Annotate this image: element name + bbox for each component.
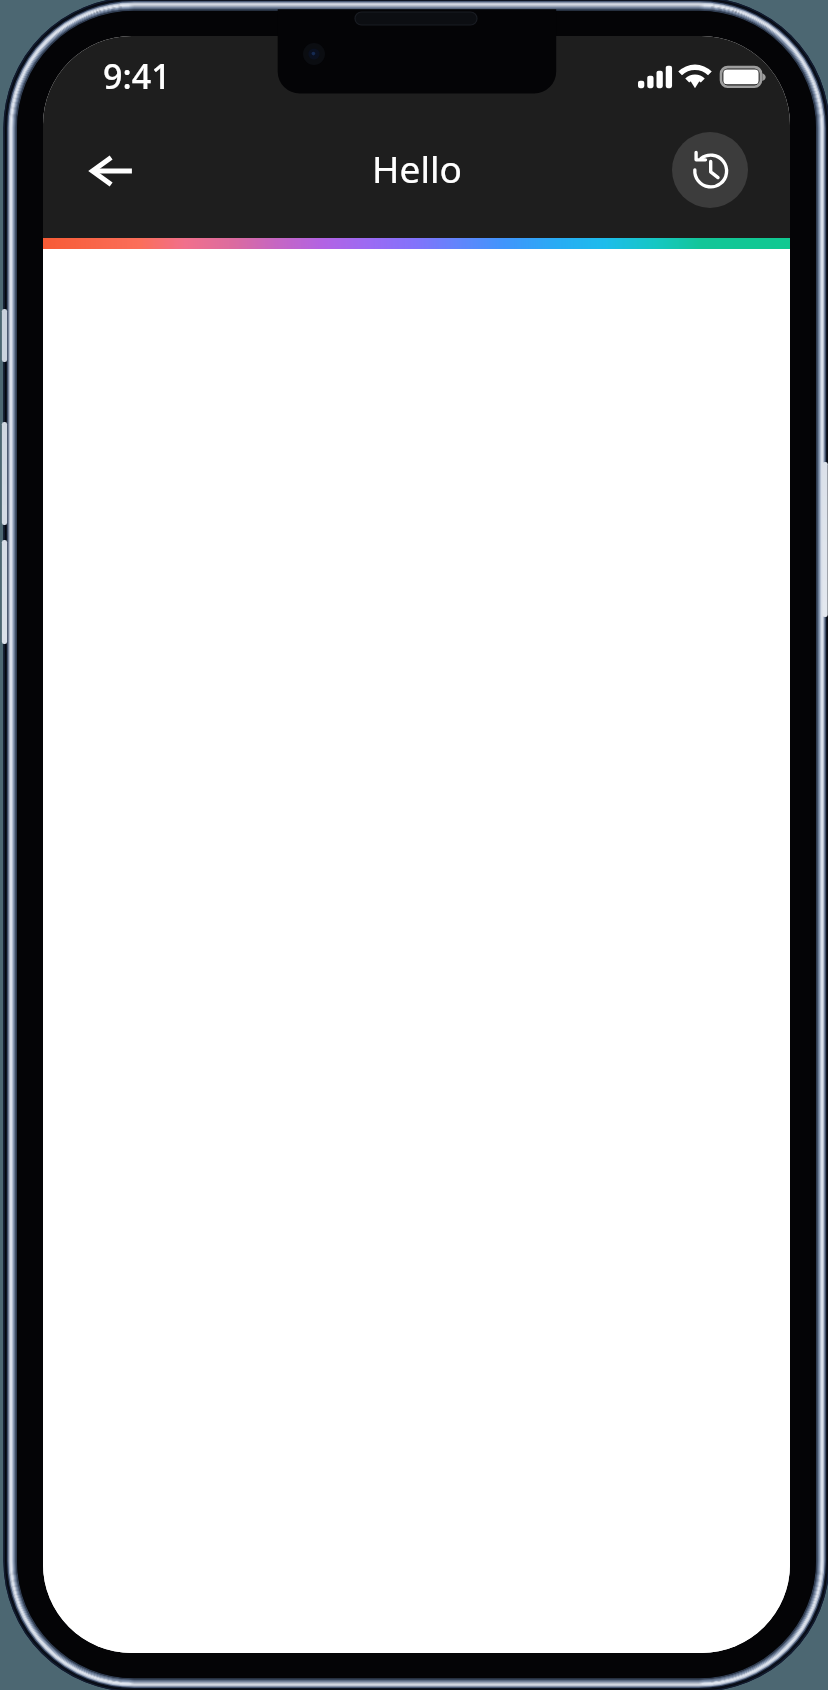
staticText: Hello [372, 143, 462, 193]
staticText: 9:41 [103, 53, 171, 99]
button[interactable]: History [672, 132, 748, 208]
button[interactable]: Back [76, 135, 148, 207]
